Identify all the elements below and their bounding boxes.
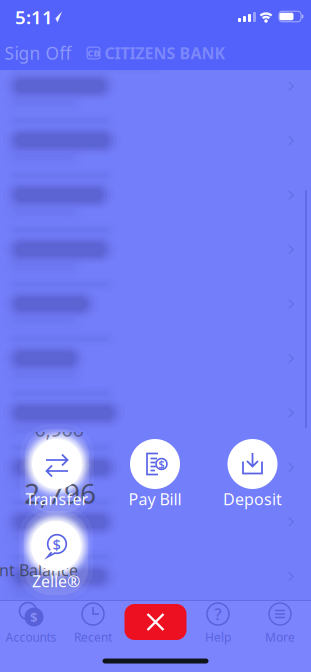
button[interactable]: Accounts — [2, 601, 60, 645]
staticText: 5:11 — [15, 5, 53, 29]
staticText: Zelle® — [32, 570, 80, 592]
button[interactable]: Transfer — [21, 439, 93, 511]
button[interactable]: Recent — [64, 601, 122, 645]
staticText: $ — [158, 457, 164, 471]
staticText: CITIZENS BANK — [104, 42, 225, 64]
button[interactable]: More — [251, 601, 309, 645]
staticText: Transfer — [25, 488, 88, 510]
button[interactable]: Help — [189, 601, 247, 645]
staticText: Accounts — [5, 629, 56, 645]
staticText: CB — [87, 47, 99, 59]
staticText: More — [265, 629, 295, 645]
staticText: ent Balance — [0, 559, 78, 581]
button[interactable]: Pay Bill — [119, 439, 191, 511]
staticText: Deposit — [223, 488, 282, 510]
staticText: $ — [52, 535, 60, 554]
staticText: $ — [30, 608, 38, 626]
button[interactable]: Zelle — [20, 521, 92, 593]
staticText: Help — [205, 629, 231, 645]
staticText: 0,906 — [34, 416, 83, 442]
staticText: Sign Off — [4, 41, 71, 64]
staticText: Recent — [74, 629, 112, 645]
button[interactable]: Deposit — [216, 439, 288, 511]
staticText: Pay Bill — [128, 488, 181, 510]
button[interactable]: Close — [124, 604, 186, 640]
staticText: ? — [214, 603, 221, 625]
staticText: 2,796 — [24, 474, 96, 512]
button[interactable]: Sign Off — [4, 41, 71, 64]
